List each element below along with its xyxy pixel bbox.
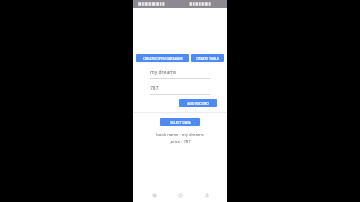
staticText: ADD RECORD	[187, 101, 209, 106]
button[interactable]: Back	[201, 190, 211, 200]
staticText: SELECT DATA	[170, 120, 191, 125]
button[interactable]: Recent apps	[149, 190, 159, 200]
staticText: book name : my dreams	[156, 132, 204, 138]
button[interactable]: 787	[150, 85, 210, 95]
staticText: price : 787	[170, 139, 191, 145]
button[interactable]: CREATE/OPEN DATABASE	[136, 54, 189, 62]
button[interactable]: CREATE TABLE	[191, 54, 224, 62]
staticText: 787	[150, 85, 159, 92]
button[interactable]: ADD RECORD	[179, 99, 217, 107]
button[interactable]: SELECT DATA	[160, 118, 200, 126]
staticText: my dreams	[150, 69, 177, 76]
button[interactable]: Home	[175, 190, 185, 200]
staticText: CREATE TABLE	[196, 56, 219, 61]
staticText: CREATE/OPEN DATABASE	[143, 56, 183, 61]
button[interactable]: my dreams	[150, 69, 210, 79]
